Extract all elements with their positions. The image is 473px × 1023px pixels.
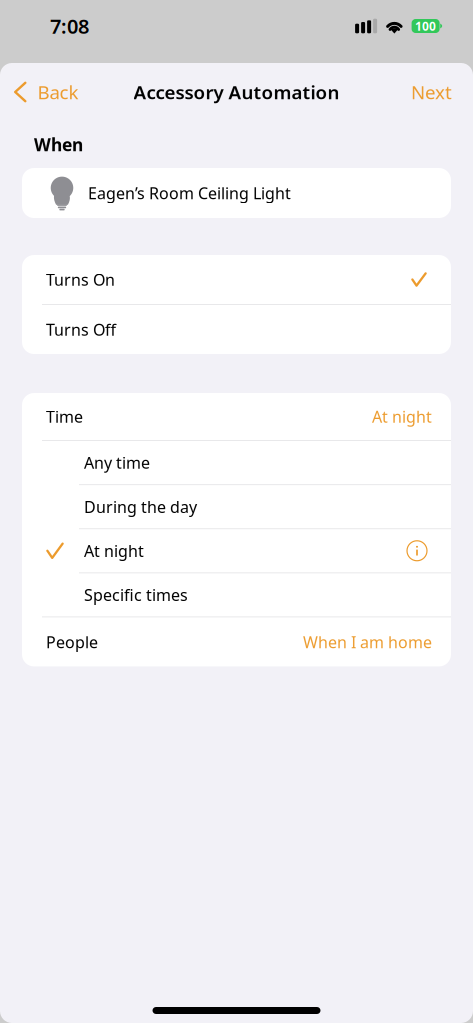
button[interactable]: Turns On <box>22 255 451 304</box>
staticText: Specific times <box>84 584 188 605</box>
staticText: At night <box>372 406 432 427</box>
staticText: Accessory Automation <box>133 80 339 104</box>
button[interactable]: During the day <box>22 485 451 528</box>
staticText: When I am home <box>303 631 432 652</box>
staticText: When <box>34 133 83 156</box>
staticText: Eagen’s Room Ceiling Light <box>88 182 291 204</box>
button[interactable]: Any time <box>22 441 451 484</box>
staticText: Next <box>411 80 452 104</box>
staticText: Turns Off <box>46 319 116 340</box>
staticText: At night <box>84 540 144 561</box>
button[interactable]: At night <box>22 529 451 572</box>
staticText: Time <box>46 406 83 427</box>
staticText: During the day <box>84 496 197 517</box>
staticText: Back <box>37 80 78 104</box>
staticText: 100 <box>415 18 436 34</box>
staticText: 7:08 <box>50 13 89 39</box>
button[interactable]: Next <box>397 71 473 113</box>
button[interactable]: Eagen’s Room Ceiling Light <box>22 168 451 218</box>
button[interactable]: Time <box>22 393 451 440</box>
button[interactable]: People <box>22 617 451 666</box>
staticText: People <box>46 631 98 652</box>
staticText: Any time <box>84 452 150 473</box>
staticText: Turns On <box>46 269 115 290</box>
button[interactable]: Back <box>0 71 88 113</box>
button[interactable]: Specific times <box>22 573 451 616</box>
button[interactable]: Turns Off <box>22 305 451 354</box>
